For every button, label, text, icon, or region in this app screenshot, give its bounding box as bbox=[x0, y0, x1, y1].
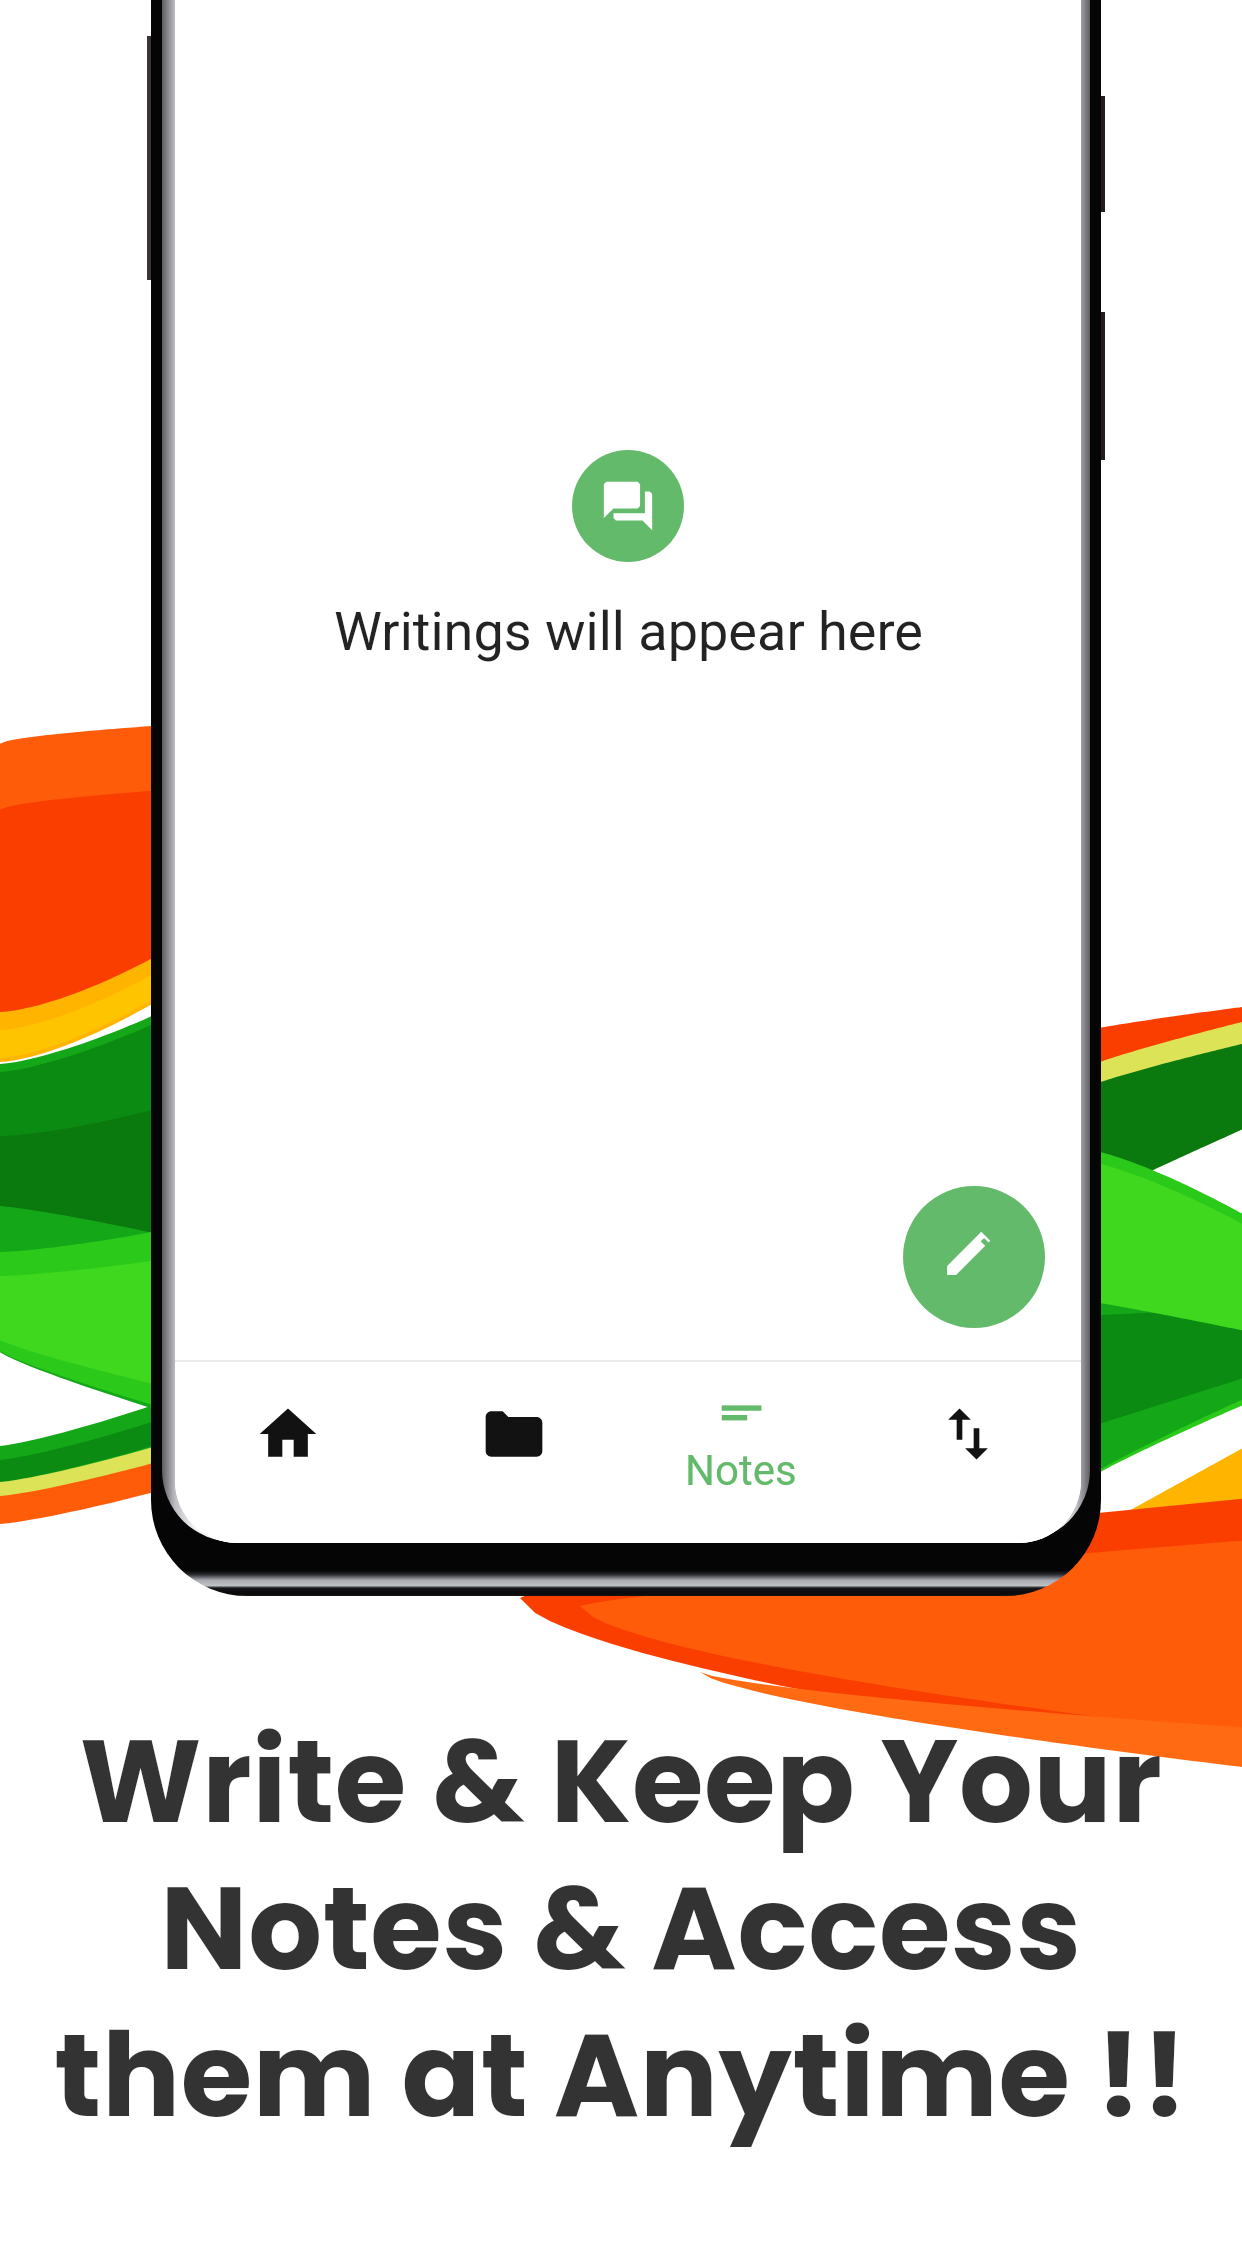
button[interactable]: Sort bbox=[854, 1362, 1081, 1543]
button[interactable]: Folders bbox=[401, 1362, 627, 1543]
button[interactable]: New note bbox=[903, 1186, 1045, 1328]
button[interactable]: Notes bbox=[627, 1362, 854, 1543]
staticText: Notes bbox=[685, 1446, 797, 1495]
button[interactable]: Home bbox=[175, 1362, 401, 1543]
staticText: Write & Keep Your Notes & Access them at… bbox=[0, 1700, 1242, 2156]
staticText: Writings will appear here bbox=[334, 600, 923, 663]
